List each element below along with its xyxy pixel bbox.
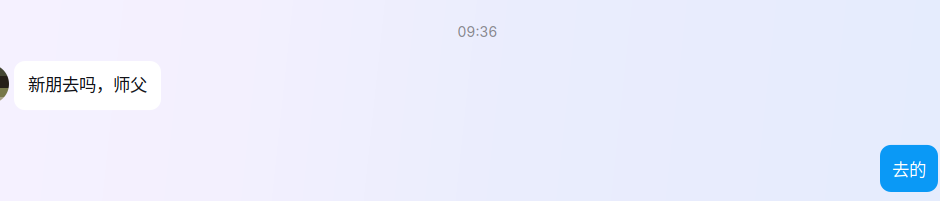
staticText: 09:36 [457,23,497,40]
staticText: 去的 [892,156,926,181]
button[interactable]: 去的 [880,145,938,192]
button[interactable]: Sender profile photo [0,64,9,104]
staticText: 新朋去吗，师父 [28,71,147,96]
button[interactable]: 新朋去吗，师父 [14,61,161,110]
